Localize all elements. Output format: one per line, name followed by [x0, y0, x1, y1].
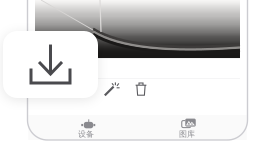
button[interactable]: 设备 [57, 116, 115, 141]
button[interactable]: Delete [127, 77, 155, 101]
staticText: 图库 [179, 129, 195, 139]
button[interactable]: 图库 [158, 116, 216, 141]
button[interactable]: Enhance [98, 77, 126, 101]
staticText: 设备 [78, 129, 94, 139]
